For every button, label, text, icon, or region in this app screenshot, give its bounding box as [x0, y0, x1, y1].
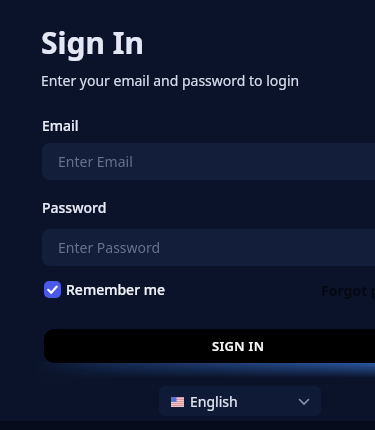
staticText: Forgot password?	[321, 281, 375, 300]
staticText: English	[190, 392, 238, 411]
staticText: Sign In	[41, 22, 144, 63]
button[interactable]: Forgot password?	[321, 281, 375, 301]
staticText: SIGN IN	[212, 337, 265, 355]
button[interactable]: Enter Email	[42, 143, 375, 180]
staticText: Email	[42, 116, 79, 135]
staticText: Enter Password	[58, 238, 161, 257]
button[interactable]: English	[159, 386, 321, 416]
button[interactable]: Remember me	[40, 277, 180, 302]
button[interactable]	[44, 329, 375, 363]
button[interactable]: Enter Password	[42, 229, 375, 266]
staticText: Enter Email	[58, 152, 133, 171]
staticText: Password	[42, 198, 107, 217]
staticText: Enter your email and password to login	[41, 71, 300, 90]
staticText: Remember me	[66, 280, 166, 299]
